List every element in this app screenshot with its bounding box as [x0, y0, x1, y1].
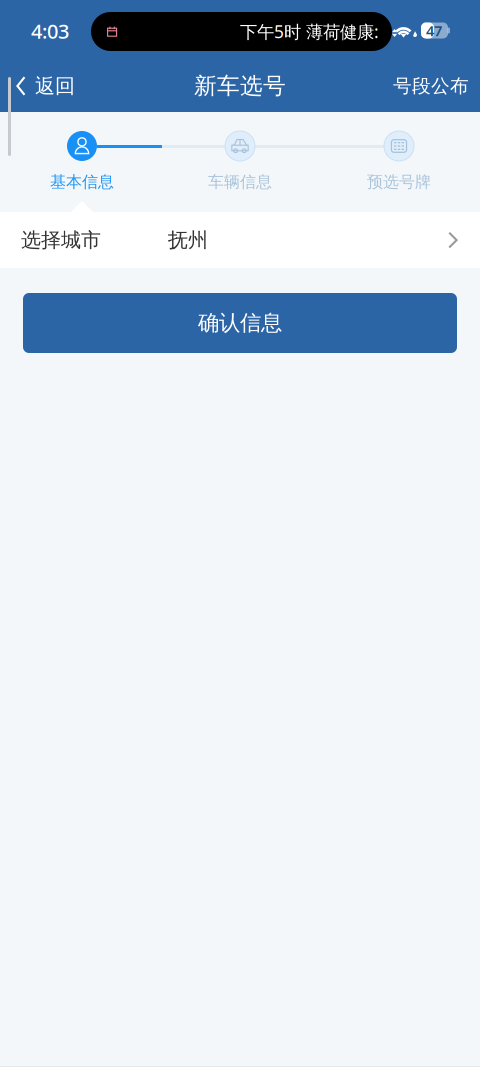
staticText: 4:03 — [31, 18, 69, 44]
staticText: 基本信息 — [50, 172, 114, 192]
staticText: 返回 — [35, 74, 75, 98]
staticText: 选择城市 — [21, 228, 101, 252]
button[interactable]: 选择城市 — [0, 212, 480, 268]
staticText: 确认信息 — [198, 310, 282, 336]
staticText: 新车选号 — [194, 72, 286, 100]
staticText: 47 — [426, 21, 442, 40]
staticText: 抚州 — [168, 228, 208, 252]
button[interactable]: 确认信息 — [23, 293, 457, 353]
staticText: 号段公布 — [393, 74, 469, 97]
staticText: 预选号牌 — [367, 172, 431, 192]
button[interactable]: 号段公布 — [379, 60, 480, 112]
button[interactable]: 返回 — [0, 60, 89, 112]
staticText: 下午5时 薄荷健康: — [240, 20, 379, 43]
staticText: 车辆信息 — [208, 172, 272, 192]
